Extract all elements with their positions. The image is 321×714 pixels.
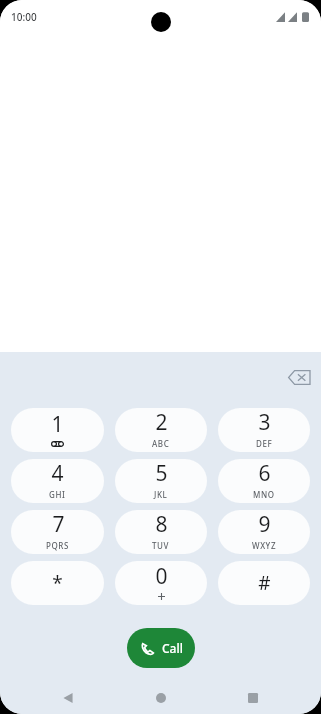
button[interactable]: Recents: [237, 682, 269, 714]
staticText: 6: [258, 459, 271, 488]
button[interactable]: Backspace: [282, 362, 316, 392]
staticText: 1: [51, 410, 64, 439]
staticText: 8: [155, 510, 168, 539]
staticText: *: [52, 570, 63, 596]
button[interactable]: 5: [115, 459, 207, 503]
staticText: #: [258, 570, 271, 596]
button[interactable]: *: [11, 561, 104, 605]
staticText: 9: [258, 510, 271, 539]
button[interactable]: Call: [127, 628, 195, 668]
staticText: 0: [155, 562, 168, 591]
staticText: TUV: [152, 540, 170, 551]
button[interactable]: 9: [218, 510, 310, 554]
staticText: JKL: [154, 489, 168, 500]
button[interactable]: 4: [11, 459, 104, 503]
staticText: DEF: [256, 438, 273, 449]
button[interactable]: Home: [145, 682, 177, 714]
staticText: GHI: [49, 489, 66, 500]
button[interactable]: #: [218, 561, 310, 605]
button[interactable]: 8: [115, 510, 207, 554]
staticText: 3: [258, 408, 271, 437]
staticText: 2: [155, 408, 168, 437]
button[interactable]: 0: [115, 561, 207, 605]
button[interactable]: Back: [52, 682, 84, 714]
staticText: 5: [155, 459, 168, 488]
staticText: 7: [52, 510, 65, 539]
staticText: 4: [51, 459, 64, 488]
button[interactable]: 1: [11, 408, 104, 452]
button[interactable]: 7: [11, 510, 104, 554]
staticText: MNO: [253, 489, 275, 500]
button[interactable]: 2: [115, 408, 207, 452]
staticText: Call: [162, 640, 183, 656]
staticText: WXYZ: [252, 540, 277, 551]
button[interactable]: 6: [218, 459, 310, 503]
button[interactable]: 3: [218, 408, 310, 452]
staticText: PQRS: [46, 540, 70, 551]
staticText: 10:00: [11, 10, 37, 24]
staticText: ABC: [152, 438, 170, 449]
